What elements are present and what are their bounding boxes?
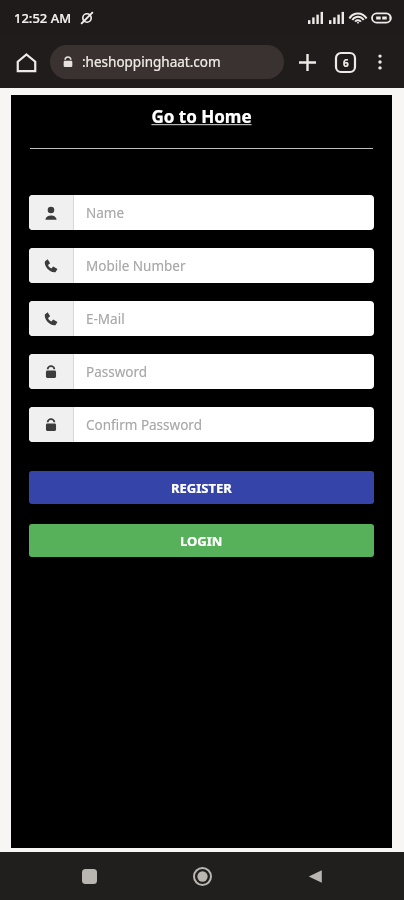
button[interactable]: Password — [29, 354, 374, 389]
button[interactable]: Tabs, 6 open — [328, 45, 362, 79]
staticText: 6 — [343, 56, 349, 70]
staticText: E-Mail — [86, 310, 125, 328]
staticText: Name — [86, 204, 125, 222]
staticText: :heshoppinghaat.com — [82, 53, 221, 71]
button[interactable]: LOGIN — [29, 524, 374, 557]
staticText: Mobile Number — [86, 257, 186, 275]
button[interactable]: E-Mail — [29, 301, 374, 336]
button[interactable]: More options — [364, 46, 396, 78]
button[interactable]: Confirm Password — [29, 407, 374, 442]
button[interactable]: :heshoppinghaat.com — [50, 45, 284, 79]
staticText: Go to Home — [151, 105, 252, 128]
button[interactable]: Name — [29, 195, 374, 230]
staticText: Password — [86, 363, 148, 381]
button[interactable]: Back — [291, 852, 339, 900]
button[interactable]: Home — [8, 44, 44, 80]
staticText: Confirm Password — [86, 416, 202, 434]
staticText: LOGIN — [180, 532, 223, 550]
button[interactable]: New tab — [290, 45, 324, 79]
staticText: 12:52 AM — [14, 9, 72, 27]
button[interactable]: Mobile Number — [29, 248, 374, 283]
staticText: REGISTER — [171, 479, 232, 497]
button[interactable]: Recents — [65, 852, 113, 900]
button[interactable]: REGISTER — [29, 471, 374, 504]
button[interactable]: Home — [178, 852, 226, 900]
button[interactable]: Go to Home — [11, 105, 392, 128]
